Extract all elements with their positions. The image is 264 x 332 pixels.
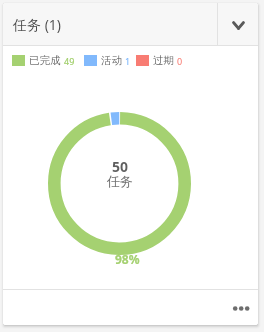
staticText: 过期 — [153, 54, 174, 67]
staticText: 49 — [64, 55, 75, 67]
staticText: 活动 — [101, 54, 122, 67]
staticText: 50 — [112, 157, 129, 176]
staticText: 98% — [115, 251, 140, 267]
button[interactable]: More options — [224, 290, 258, 325]
staticText: 0 — [177, 55, 183, 67]
staticText: 任务 — [107, 173, 133, 189]
staticText: 1 — [125, 55, 131, 67]
button[interactable]: Collapse card — [218, 3, 258, 45]
staticText: 任务 (1) — [13, 15, 217, 34]
staticText: 已完成 — [29, 54, 61, 67]
